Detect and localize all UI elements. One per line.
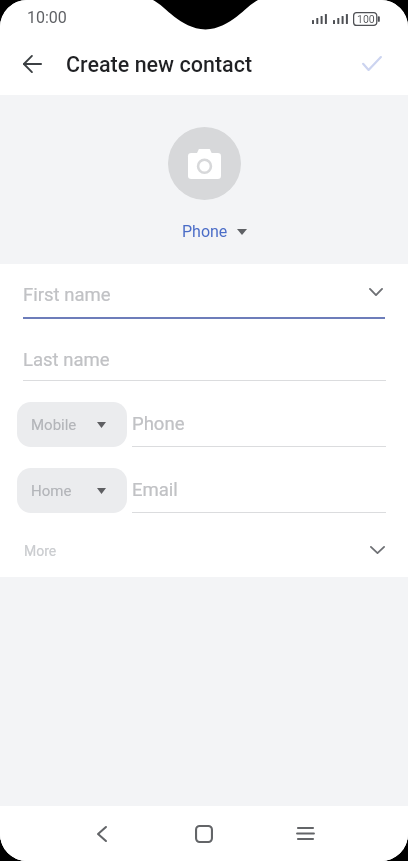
staticText: Phone — [132, 413, 185, 435]
staticText: Mobile — [31, 416, 77, 434]
button[interactable]: Expand name fields — [361, 277, 391, 307]
staticText: Phone — [182, 222, 228, 241]
staticText: Create new contact — [66, 52, 253, 77]
button[interactable]: Mobile — [17, 402, 127, 447]
staticText: 10:00 — [27, 8, 67, 27]
button[interactable] — [132, 470, 385, 512]
button[interactable]: Recent apps — [277, 806, 333, 861]
button[interactable]: Phone — [175, 217, 254, 246]
button[interactable]: More — [0, 529, 408, 571]
button[interactable]: Back — [74, 806, 130, 861]
button[interactable]: Save contact — [351, 42, 393, 84]
button[interactable] — [0, 272, 408, 318]
staticText: Email — [132, 479, 178, 501]
button[interactable]: Home — [17, 468, 127, 513]
staticText: Last name — [23, 349, 110, 371]
staticText: 100 — [357, 13, 375, 25]
staticText: First name — [23, 284, 111, 306]
staticText: Home — [31, 482, 72, 500]
button[interactable] — [0, 336, 408, 378]
staticText: More — [24, 543, 57, 559]
button[interactable]: Add photo — [168, 127, 241, 200]
button[interactable]: Home — [176, 806, 232, 861]
button[interactable] — [132, 404, 385, 446]
button[interactable]: Back — [11, 43, 53, 85]
